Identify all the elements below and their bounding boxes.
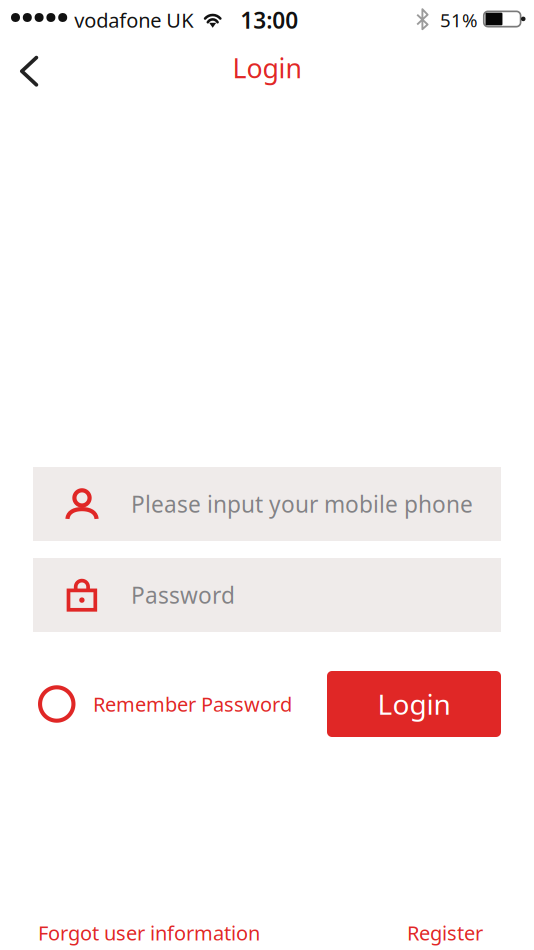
button[interactable]: Please input your mobile phone xyxy=(33,467,501,541)
button[interactable]: Register xyxy=(407,919,483,946)
staticText: Please input your mobile phone xyxy=(131,489,473,519)
button[interactable]: Back xyxy=(0,40,54,96)
button[interactable]: Remember Password xyxy=(33,671,292,737)
staticText: Remember Password xyxy=(93,691,292,717)
staticText: Login xyxy=(232,50,301,86)
staticText: vodafone UK xyxy=(74,7,193,33)
button[interactable]: Login xyxy=(327,671,501,737)
button[interactable]: Password xyxy=(33,558,501,632)
staticText: Forgot user information xyxy=(38,919,260,946)
button[interactable]: Forgot user information xyxy=(38,919,260,946)
staticText: Register xyxy=(407,919,483,946)
staticText: 51% xyxy=(440,8,478,32)
staticText: 13:00 xyxy=(240,5,298,35)
staticText: Password xyxy=(131,580,235,610)
staticText: Login xyxy=(377,685,450,723)
